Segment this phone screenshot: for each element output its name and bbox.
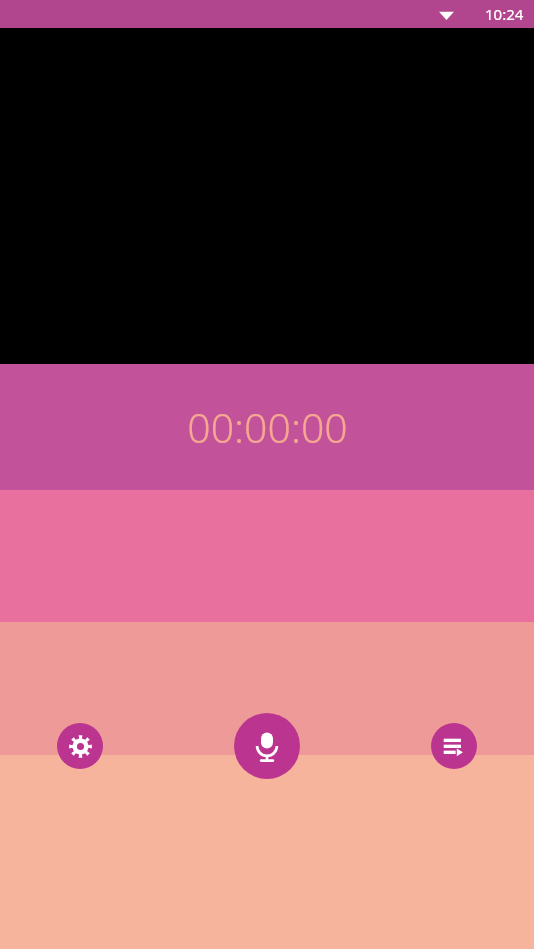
button[interactable]: Record	[234, 713, 300, 779]
button[interactable]: Settings	[57, 723, 103, 769]
staticText: 00:00:00	[187, 399, 348, 455]
button[interactable]: Recordings list	[431, 723, 477, 769]
staticText: 10:24	[485, 4, 524, 24]
